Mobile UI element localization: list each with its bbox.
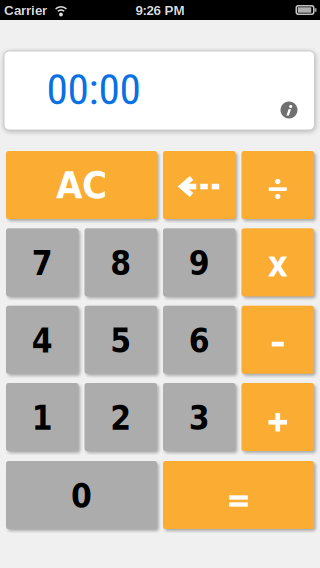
button[interactable]: Backspace [163,151,235,219]
button[interactable]: 1 [6,383,78,451]
button[interactable]: 5 [84,306,157,374]
staticText: Carrier [4,3,47,18]
staticText: 4 [32,321,53,360]
button[interactable]: Divide [241,151,314,219]
staticText: 8 [110,244,131,283]
button[interactable]: 4 [6,306,78,374]
staticText: 6 [189,321,210,360]
button[interactable]: 2 [84,383,157,451]
staticText: 0 [71,477,92,516]
staticText: x [268,244,288,285]
staticText: 7 [32,244,53,283]
button[interactable]: 6 [163,306,235,374]
staticText: 5 [110,321,131,360]
button[interactable]: AC [6,151,157,219]
button[interactable]: Info [280,101,297,118]
button[interactable]: 3 [163,383,235,451]
staticText: 2 [110,399,131,438]
button[interactable]: Minus [241,306,314,374]
button[interactable]: 0 [6,461,157,529]
staticText: 9:26 PM [135,3,184,18]
button[interactable]: 7 [6,228,78,296]
staticText: 3 [189,399,210,438]
button[interactable]: Equals [163,461,314,529]
staticText: 1 [32,399,53,438]
staticText: AC [56,163,107,207]
button[interactable]: 8 [84,228,157,296]
staticText: 9 [189,244,210,283]
button[interactable]: 9 [163,228,235,296]
staticText: 00:00 [46,64,140,115]
button[interactable]: Multiply [241,228,314,296]
button[interactable]: Plus [241,383,314,451]
